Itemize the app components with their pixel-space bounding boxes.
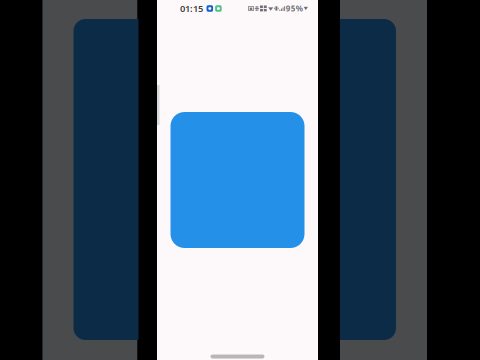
staticText: 01:15: [180, 2, 203, 15]
button[interactable]: Blue square: [170, 112, 304, 248]
staticText: 95%: [286, 3, 303, 14]
